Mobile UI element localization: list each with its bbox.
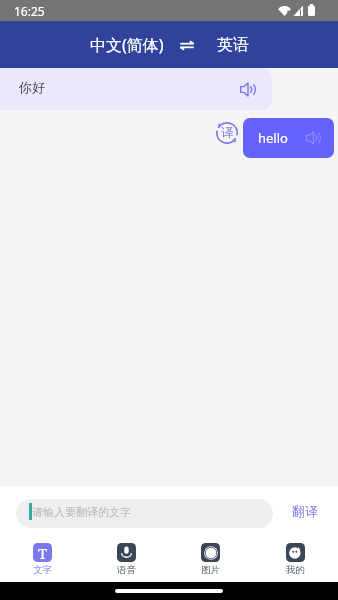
button[interactable]: Translate again	[216, 122, 238, 144]
staticText: 译	[221, 125, 234, 141]
button[interactable]: Play source audio	[238, 80, 256, 98]
button[interactable]: 语音	[84, 540, 168, 582]
staticText: T	[38, 543, 48, 562]
staticText: 图片	[201, 564, 220, 576]
button[interactable]: T	[0, 540, 84, 582]
button[interactable]: hello	[243, 118, 334, 158]
staticText: 翻译	[292, 503, 318, 519]
staticText: 英语	[217, 35, 249, 55]
staticText: 中文(简体)	[90, 34, 164, 56]
button[interactable]: 图片	[168, 540, 253, 582]
staticText: 你好	[19, 79, 45, 95]
button[interactable]: 你好	[0, 68, 272, 110]
staticText: 16:25	[14, 3, 45, 19]
button[interactable]: Play translation audio	[305, 130, 321, 146]
staticText: 文字	[33, 564, 52, 576]
staticText: 请输入要翻译的文字	[32, 505, 131, 519]
button[interactable]: 翻译	[286, 499, 324, 523]
staticText: hello	[258, 129, 288, 147]
button[interactable]: Swap languages	[179, 37, 195, 53]
staticText: 语音	[117, 564, 136, 576]
button[interactable]: 英语	[215, 35, 251, 55]
staticText: 我的	[286, 564, 305, 576]
button[interactable]: 中文(简体)	[88, 34, 166, 56]
button[interactable]: 我的	[253, 540, 338, 582]
button[interactable]: 请输入要翻译的文字	[16, 499, 273, 528]
